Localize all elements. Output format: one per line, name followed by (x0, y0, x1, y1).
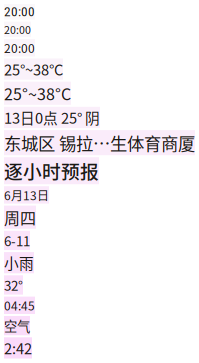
staticText: 2:42 (4, 337, 32, 358)
staticText: 6-11 (4, 231, 30, 250)
staticText: 东城区 锡拉…生体育商厦 (4, 130, 195, 155)
staticText: 04:45 (4, 297, 35, 314)
staticText: 小雨 (4, 252, 34, 273)
staticText: 13日0点 25° 阴 (4, 107, 100, 128)
staticText: 20:00 (4, 39, 35, 56)
staticText: 20:00 (4, 22, 31, 37)
staticText: 25°~38°C (4, 58, 63, 80)
staticText: 逐小时预报 (4, 157, 99, 184)
staticText: 20:00 (4, 4, 35, 20)
staticText: 32° (4, 275, 23, 295)
staticText: 周四 (4, 206, 36, 229)
staticText: 6月13日 (4, 186, 49, 204)
staticText: 空气 (4, 316, 30, 335)
staticText: 25°~38°C (4, 82, 71, 105)
